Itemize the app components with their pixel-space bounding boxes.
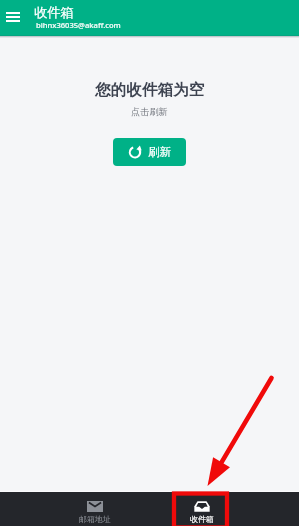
staticText: 点击刷新 [131,106,168,118]
staticText: 收件箱 [190,514,214,524]
staticText: 邮箱地址 [79,514,111,524]
staticText: 收件箱 [34,4,74,21]
staticText: 您的收件箱为空 [95,80,205,100]
button[interactable]: 收件箱 [148,491,255,526]
button[interactable]: Open navigation menu [0,4,26,30]
staticText: 刷新 [148,145,172,160]
staticText: bihnx36035@akaff.com [36,20,121,30]
button[interactable]: 刷新 [113,138,186,166]
button[interactable]: 邮箱地址 [41,491,148,526]
